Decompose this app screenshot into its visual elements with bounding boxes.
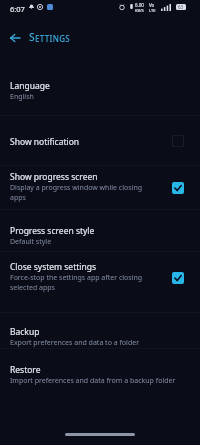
staticText: English — [10, 92, 34, 102]
staticText: apps — [10, 193, 26, 203]
staticText: Import preferences and data from a backu… — [10, 376, 176, 386]
button[interactable]: Toggle — [172, 182, 184, 194]
button[interactable]: Toggle — [172, 272, 184, 284]
button[interactable]: Back — [3, 26, 27, 50]
staticText: ETTINGS — [35, 33, 70, 44]
staticText: S — [29, 30, 35, 44]
staticText: Show notification — [10, 136, 80, 148]
staticText: 6.00 — [135, 2, 144, 8]
button[interactable]: Close system settings — [0, 255, 200, 299]
staticText: Display a progress window while closing — [10, 183, 143, 193]
button[interactable]: Toggle — [172, 135, 184, 147]
staticText: Restore — [10, 364, 41, 376]
button[interactable]: Restore — [0, 358, 200, 392]
staticText: Progress screen style — [10, 225, 95, 237]
staticText: Backup — [10, 326, 40, 338]
staticText: Export preferences and data to a folder — [10, 338, 140, 348]
button[interactable]: Backup — [0, 320, 200, 354]
staticText: LTE — [149, 8, 156, 13]
button[interactable]: Progress screen style — [0, 219, 200, 253]
staticText: Show progress screen — [10, 171, 98, 183]
staticText: Default style — [10, 237, 52, 247]
staticText: Force-stop the settings app after closin… — [10, 273, 143, 283]
staticText: Vo — [149, 2, 155, 8]
staticText: 6:07 — [10, 4, 25, 14]
staticText: Close system settings — [10, 261, 97, 273]
staticText: KB/S — [135, 8, 144, 13]
button[interactable]: Language — [0, 74, 200, 108]
button[interactable]: Show progress screen — [0, 165, 200, 209]
staticText: Language — [10, 80, 50, 92]
staticText: 63 — [178, 4, 184, 10]
staticText: selected apps — [10, 283, 55, 293]
button[interactable]: Show notification — [0, 130, 200, 154]
